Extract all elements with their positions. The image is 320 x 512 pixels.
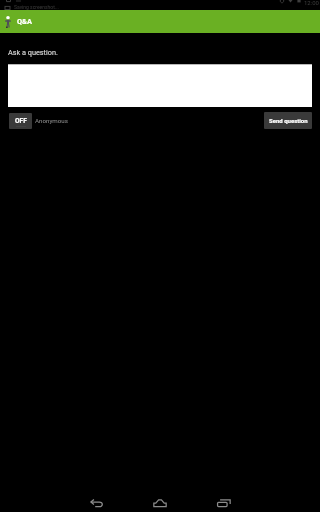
button[interactable]: Back xyxy=(71,489,121,507)
button[interactable] xyxy=(8,64,312,107)
staticText: Saving screenshot... xyxy=(14,4,59,10)
staticText: OFF xyxy=(15,117,27,125)
staticText: Q&A xyxy=(17,17,32,26)
staticText: Send question xyxy=(269,117,308,124)
button[interactable]: Send question xyxy=(264,112,312,129)
button[interactable]: Recent apps xyxy=(199,489,249,507)
staticText: Anonymous xyxy=(35,117,68,124)
staticText: Ask a question. xyxy=(8,48,58,57)
button[interactable]: Home xyxy=(135,489,185,507)
button[interactable]: OFF xyxy=(9,113,32,129)
staticText: 12:00 xyxy=(304,0,319,6)
